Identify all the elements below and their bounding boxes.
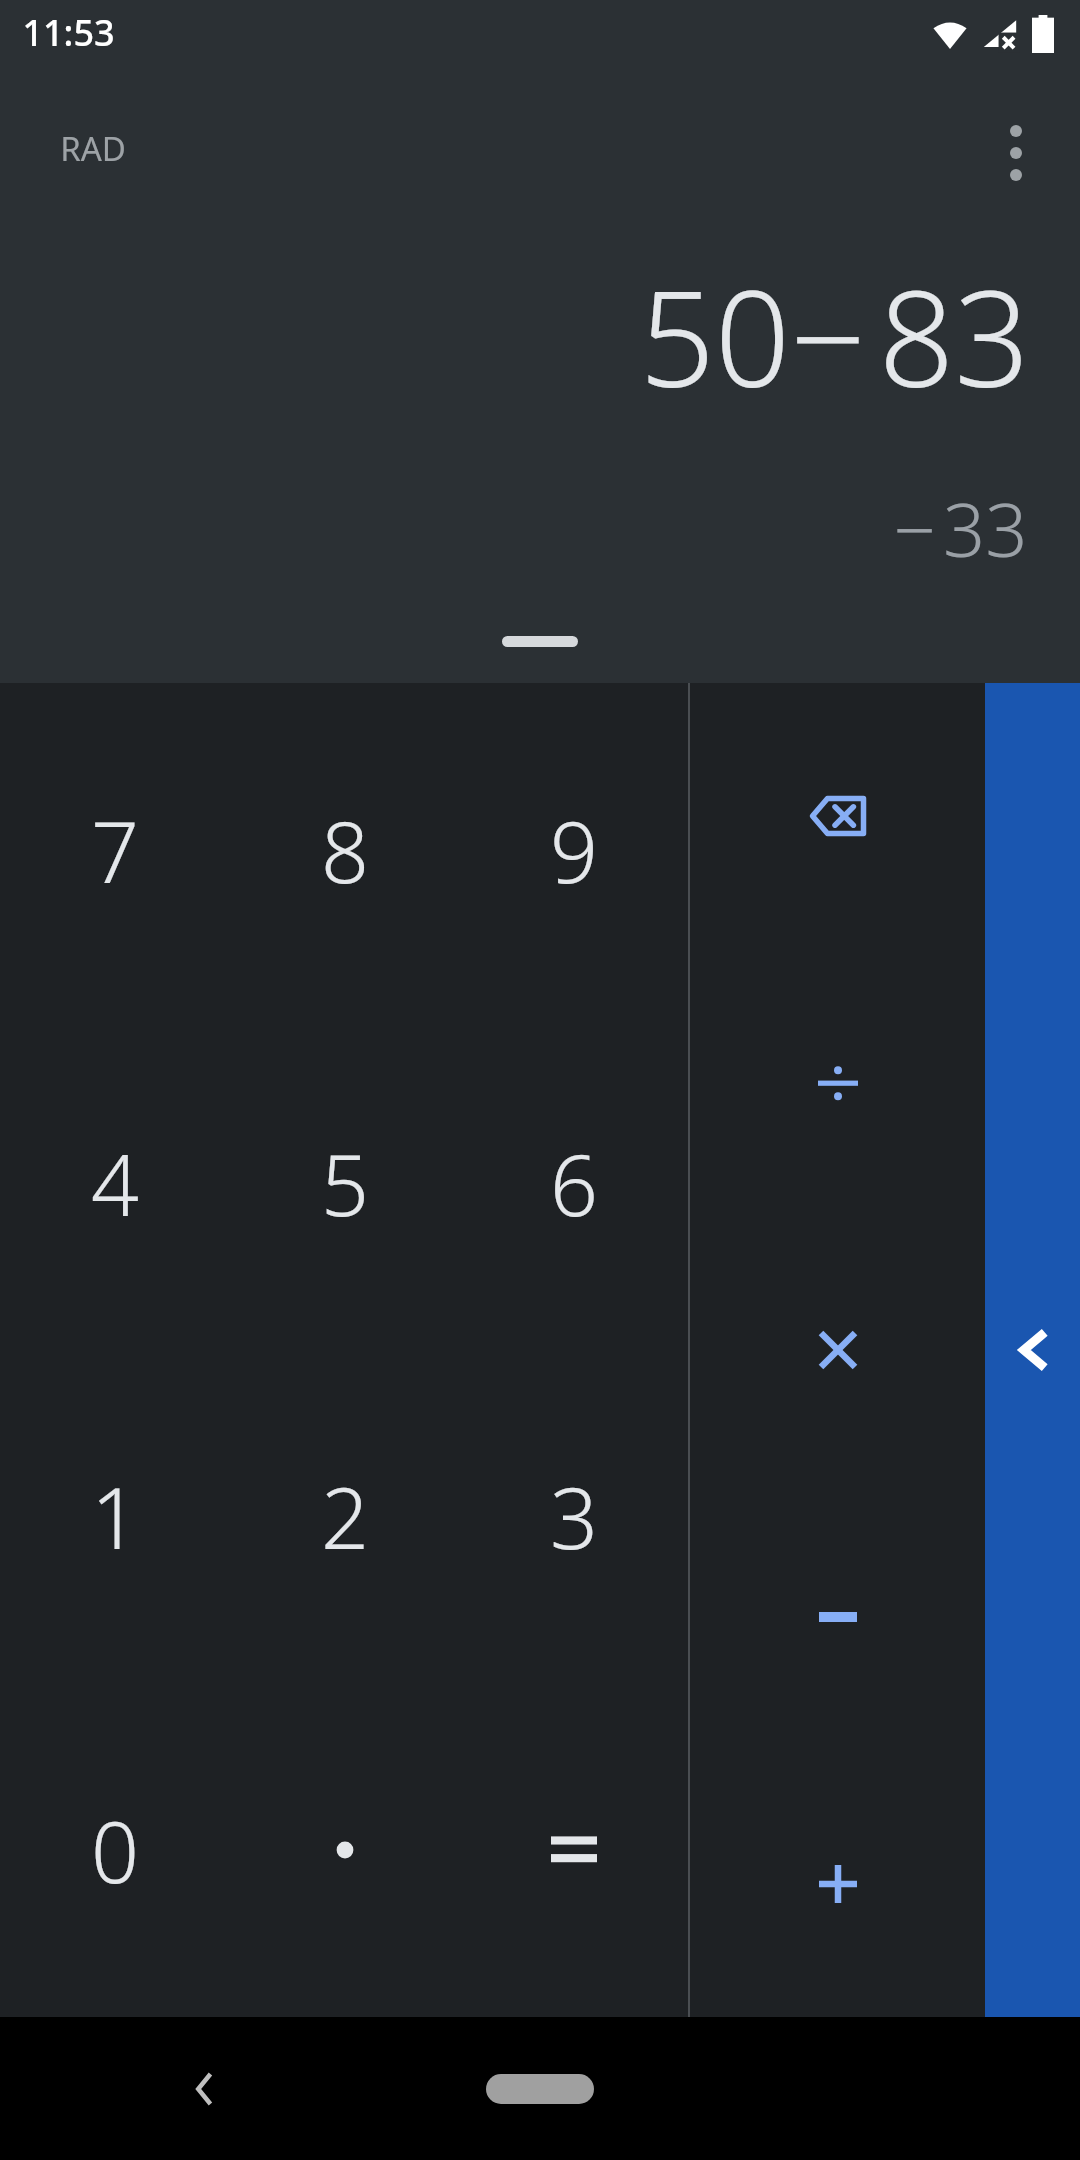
button[interactable]: 0 — [0, 1683, 230, 2017]
staticText: 9 — [550, 793, 598, 907]
button[interactable] — [459, 1683, 688, 2017]
staticText: RAD — [60, 126, 126, 171]
button[interactable]: 6 — [459, 1016, 688, 1349]
button[interactable]: Back — [150, 2034, 260, 2144]
staticText: 0 — [91, 1793, 139, 1907]
button[interactable]: 2 — [230, 1349, 459, 1683]
button[interactable]: Expand history — [488, 622, 592, 661]
staticText: 1 — [91, 1459, 139, 1573]
staticText: 7 — [91, 793, 139, 907]
staticText: 4 — [91, 1126, 139, 1240]
button[interactable]: More options — [976, 113, 1056, 193]
staticText: 8 — [321, 793, 369, 907]
button[interactable]: Divide — [690, 949, 985, 1216]
button[interactable] — [230, 1683, 459, 2017]
button[interactable]: Subtract — [690, 1483, 985, 1750]
button[interactable]: 1 — [0, 1349, 230, 1683]
button[interactable]: Delete — [690, 683, 985, 949]
staticText: 3 — [550, 1459, 598, 1573]
staticText: 6 — [550, 1126, 598, 1240]
button[interactable]: Home — [466, 2054, 614, 2124]
button[interactable]: 8 — [230, 683, 459, 1016]
button[interactable]: 9 — [459, 683, 688, 1016]
button[interactable]: 7 — [0, 683, 230, 1016]
button[interactable]: 3 — [459, 1349, 688, 1683]
staticText: 11:53 — [22, 8, 115, 57]
staticText: 50− 83 — [639, 246, 1030, 426]
button[interactable]: Add — [690, 1750, 985, 2017]
staticText: − 33 — [893, 478, 1028, 579]
staticText: 2 — [321, 1459, 369, 1573]
staticText: 5 — [321, 1126, 369, 1240]
button[interactable]: 4 — [0, 1016, 230, 1349]
button[interactable]: 5 — [230, 1016, 459, 1349]
button[interactable]: RAD — [56, 120, 130, 177]
button[interactable]: Open advanced pad — [985, 683, 1080, 2017]
button[interactable]: Multiply — [690, 1216, 985, 1483]
